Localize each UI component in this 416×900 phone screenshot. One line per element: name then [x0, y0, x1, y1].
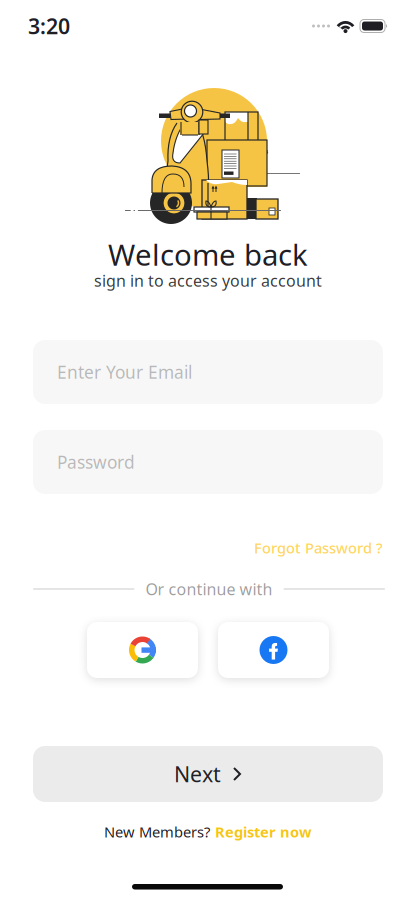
button[interactable]: Forgot Password ?: [254, 536, 383, 559]
staticText: Enter Your Email: [57, 360, 192, 383]
staticText: Register now: [215, 822, 312, 841]
staticText: sign in to access your account: [94, 270, 322, 291]
button[interactable]: Continue with Google: [87, 622, 198, 678]
staticText: 3:20: [28, 12, 70, 40]
staticText: Next: [174, 760, 221, 788]
staticText: Or continue with: [145, 578, 272, 600]
staticText: Welcome back: [108, 235, 308, 274]
staticText: Forgot Password ?: [254, 538, 383, 557]
staticText: New Members?: [104, 822, 210, 841]
staticText: Password: [57, 450, 135, 473]
button[interactable]: Register now: [215, 822, 312, 841]
button[interactable]: Continue with Facebook: [218, 622, 329, 678]
button[interactable]: Next: [33, 746, 383, 802]
